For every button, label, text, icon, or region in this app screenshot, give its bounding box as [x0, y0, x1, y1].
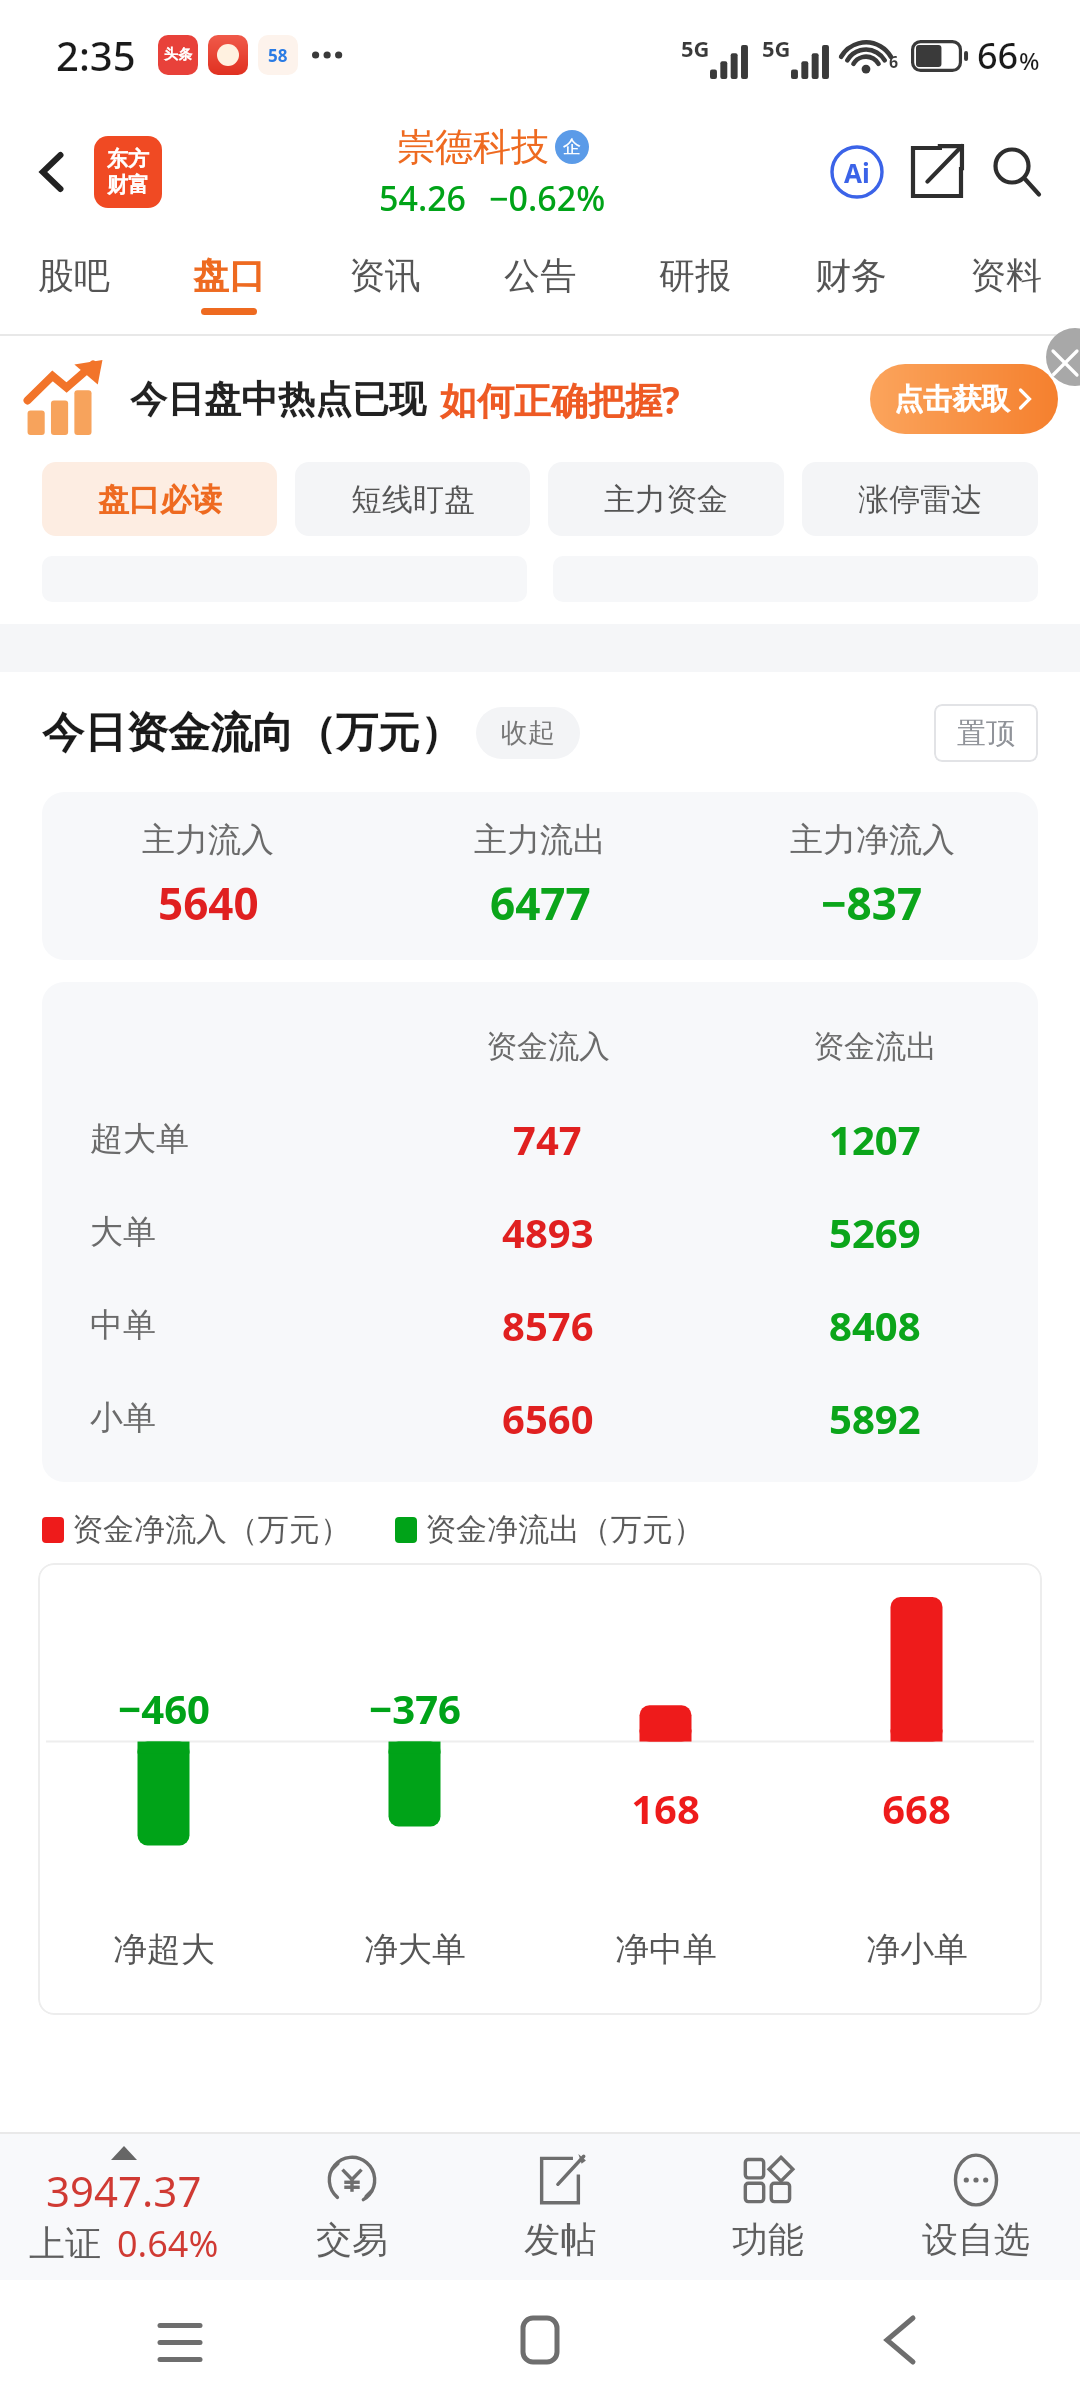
- button[interactable]: 交易: [248, 2134, 456, 2280]
- staticText: 5892: [829, 1391, 921, 1445]
- button[interactable]: 研报: [655, 253, 735, 315]
- staticText: 资讯: [349, 253, 421, 298]
- staticText: 资金净流入（万元）: [72, 1510, 351, 1549]
- staticText: 财富: [107, 172, 149, 198]
- button[interactable]: AI助手: [824, 139, 890, 205]
- button[interactable]: 大单: [42, 1185, 1038, 1278]
- staticText: 功能: [732, 2217, 804, 2262]
- staticText: 66: [977, 31, 1019, 80]
- staticText: −837: [821, 873, 923, 933]
- button[interactable]: 涨停雷达: [802, 462, 1038, 536]
- staticText: 6477: [490, 873, 591, 933]
- staticText: 企: [563, 136, 581, 159]
- staticText: 资金净流出（万元）: [425, 1510, 704, 1549]
- staticText: 5640: [158, 873, 259, 933]
- staticText: 公告: [504, 253, 576, 298]
- button[interactable]: 功能: [664, 2134, 872, 2280]
- staticText: 6560: [502, 1391, 594, 1445]
- staticText: 小单: [90, 1397, 156, 1439]
- staticText: 净超大: [113, 1928, 215, 1971]
- staticText: 资料: [970, 253, 1042, 298]
- staticText: 5269: [829, 1205, 921, 1259]
- staticText: 2:35: [56, 28, 136, 82]
- button[interactable]: 设自选: [872, 2134, 1080, 2280]
- staticText: 668: [882, 1781, 951, 1835]
- button[interactable]: 资讯: [345, 253, 425, 315]
- staticText: −460: [118, 1681, 210, 1735]
- staticText: 今日资金流向（万元）: [42, 707, 462, 760]
- staticText: 短线盯盘: [351, 480, 475, 519]
- staticText: 资金流入: [486, 1027, 610, 1066]
- button[interactable]: 中单: [42, 1278, 1038, 1371]
- staticText: 收起: [501, 716, 555, 750]
- staticText: 涨停雷达: [858, 480, 982, 519]
- staticText: 1207: [829, 1112, 921, 1166]
- staticText: 主力流入: [142, 819, 274, 861]
- button[interactable]: 主力资金: [548, 462, 784, 536]
- button[interactable]: 短线盯盘: [295, 462, 530, 536]
- staticText: 净中单: [615, 1928, 717, 1971]
- button[interactable]: 最近任务: [140, 2300, 220, 2380]
- staticText: 主力净流入: [790, 819, 955, 861]
- staticText: 发帖: [524, 2217, 596, 2262]
- staticText: 中单: [90, 1304, 156, 1346]
- staticText: %: [1019, 44, 1040, 77]
- button[interactable]: 置顶: [934, 704, 1038, 762]
- button[interactable]: 收起: [476, 707, 580, 759]
- button[interactable]: 3947.37: [0, 2134, 248, 2280]
- staticText: −376: [369, 1681, 461, 1735]
- staticText: 5G: [681, 33, 710, 63]
- staticText: 设自选: [922, 2217, 1030, 2262]
- staticText: 54.26: [379, 175, 467, 221]
- staticText: 置顶: [957, 715, 1015, 752]
- staticText: 8576: [502, 1298, 594, 1352]
- button[interactable]: 主页: [500, 2300, 580, 2380]
- button[interactable]: 返回: [860, 2300, 940, 2380]
- staticText: 主力流出: [474, 819, 606, 861]
- staticText: 崇德科技: [397, 123, 549, 171]
- button[interactable]: 公告: [500, 253, 580, 315]
- staticText: 4893: [502, 1205, 594, 1259]
- button[interactable]: 分享: [904, 139, 970, 205]
- staticText: 超大单: [90, 1118, 189, 1160]
- button[interactable]: 东方财富: [94, 136, 162, 208]
- button[interactable]: 关闭: [1046, 328, 1080, 386]
- staticText: 8408: [829, 1298, 921, 1352]
- staticText: 盘口: [193, 253, 265, 298]
- staticText: 如何正确把握?: [440, 374, 680, 425]
- staticText: 股吧: [38, 253, 110, 298]
- staticText: 今日盘中热点已现: [130, 376, 426, 423]
- staticText: 5G: [762, 33, 791, 63]
- button[interactable]: 财务: [811, 253, 891, 315]
- staticText: 研报: [659, 253, 731, 298]
- button[interactable]: 股吧: [34, 253, 114, 315]
- staticText: 点击获取: [894, 381, 1010, 418]
- staticText: 上证: [29, 2221, 101, 2266]
- staticText: 3947.37: [46, 2162, 202, 2219]
- staticText: 0.64%: [117, 2219, 219, 2268]
- button[interactable]: 盘口: [189, 253, 269, 315]
- staticText: 交易: [316, 2217, 388, 2262]
- staticText: 盘口必读: [98, 480, 222, 519]
- staticText: Ai: [844, 155, 870, 190]
- staticText: 6: [889, 51, 899, 73]
- staticText: 58: [268, 44, 288, 67]
- staticText: −0.62%: [489, 175, 606, 221]
- staticText: 净大单: [364, 1928, 466, 1971]
- button[interactable]: 盘口必读: [42, 462, 277, 536]
- staticText: 大单: [90, 1211, 156, 1253]
- button[interactable]: 小单: [42, 1371, 1038, 1464]
- staticText: 资金流出: [813, 1027, 937, 1066]
- staticText: 主力资金: [604, 480, 728, 519]
- staticText: 财务: [815, 253, 887, 298]
- button[interactable]: 点击获取: [870, 364, 1058, 434]
- staticText: 净小单: [866, 1928, 968, 1971]
- button[interactable]: 返回: [22, 141, 84, 203]
- staticText: 168: [631, 1781, 700, 1835]
- button[interactable]: 发帖: [456, 2134, 664, 2280]
- staticText: 东方: [107, 146, 149, 172]
- button[interactable]: 超大单: [42, 1092, 1038, 1185]
- button[interactable]: 资料: [966, 253, 1046, 315]
- button[interactable]: 搜索: [984, 139, 1050, 205]
- staticText: 头条: [164, 46, 192, 64]
